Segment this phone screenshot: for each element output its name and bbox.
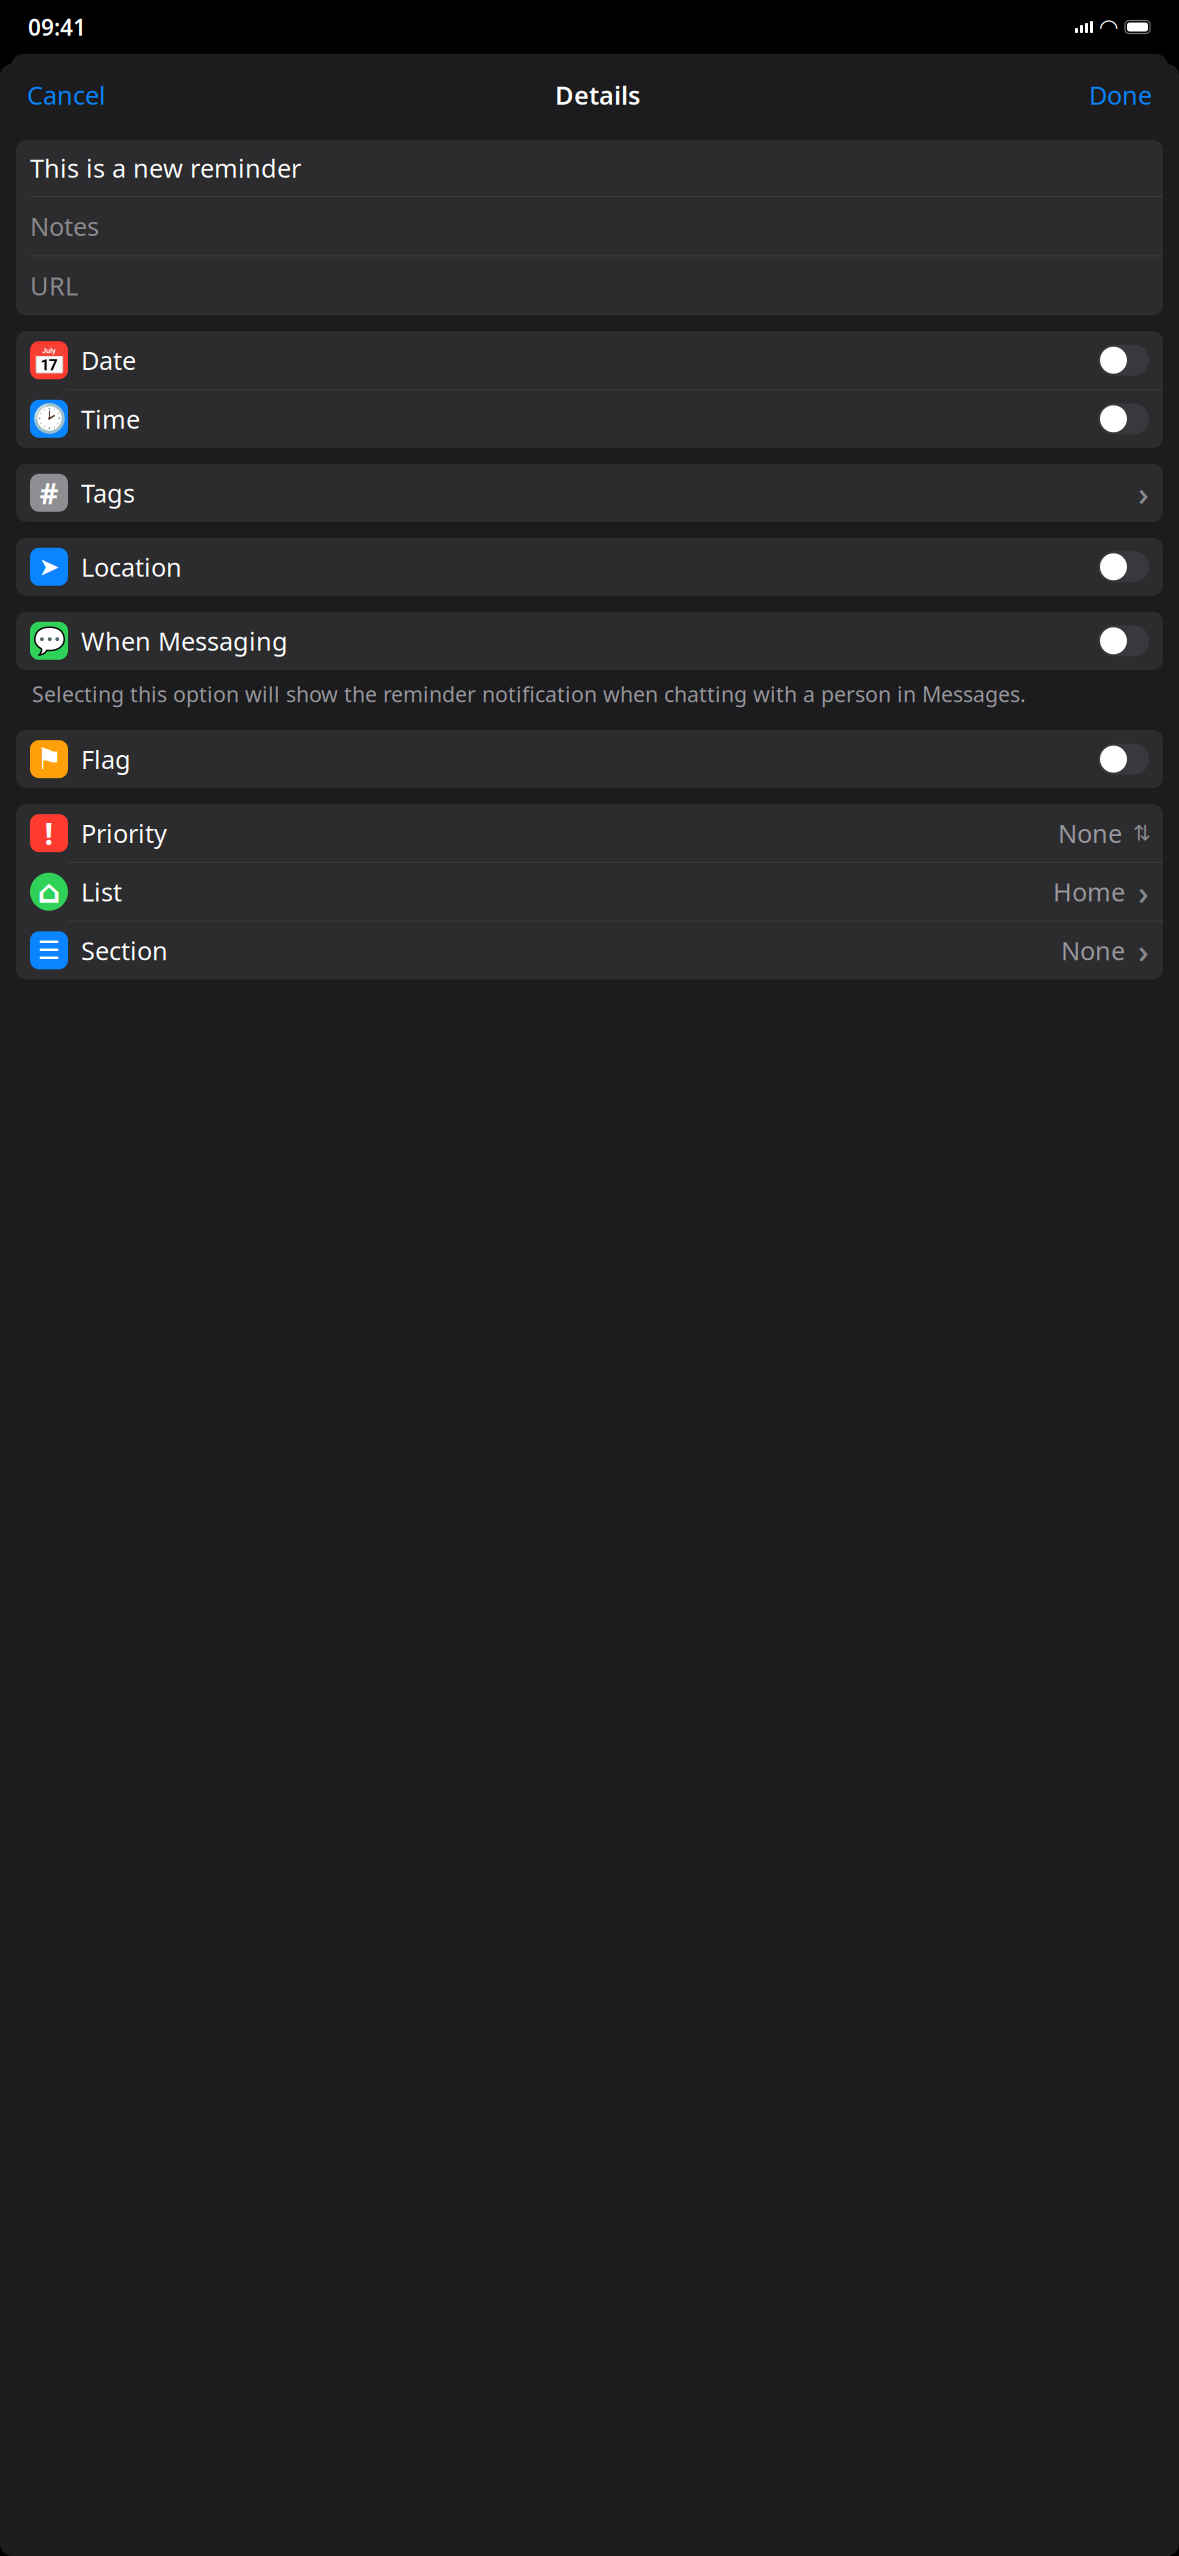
staticText: Notes	[30, 209, 99, 243]
staticText: Date	[81, 343, 136, 377]
button[interactable]: Done	[1085, 73, 1156, 117]
staticText: Cancel	[27, 78, 106, 112]
staticText: None	[1061, 933, 1125, 967]
staticText: #	[39, 473, 58, 512]
staticText: ☰	[37, 936, 60, 965]
button[interactable]: This is a new reminder	[16, 140, 1163, 196]
button[interactable]: #	[16, 464, 1163, 522]
staticText: ◠	[1100, 14, 1117, 40]
staticText: Details	[555, 78, 640, 112]
staticText: Done	[1089, 78, 1152, 112]
staticText: 09:41	[28, 12, 86, 42]
staticText: List	[81, 875, 122, 908]
button[interactable]: ⌂	[16, 863, 1163, 921]
staticText: Section	[81, 933, 168, 967]
staticText: 💬	[32, 626, 65, 656]
staticText: !	[44, 813, 53, 853]
staticText: Flag	[81, 742, 131, 776]
button[interactable]: ⚑	[16, 730, 1163, 788]
staticText: ➤	[38, 552, 59, 581]
staticText: ⌂	[37, 874, 60, 910]
button[interactable]: Notes	[16, 197, 1163, 256]
staticText: When Messaging	[81, 624, 288, 658]
button[interactable]: 📅	[16, 331, 1163, 389]
staticText: 📅	[31, 344, 66, 376]
staticText: Priority	[81, 816, 167, 850]
staticText: Home	[1053, 875, 1125, 908]
button[interactable]: Cancel	[23, 73, 110, 117]
staticText: Time	[81, 402, 140, 436]
staticText: URL	[30, 269, 78, 302]
staticText: ›	[1138, 471, 1149, 515]
staticText: ›	[1138, 928, 1149, 972]
button[interactable]: URL	[16, 256, 1163, 315]
staticText: ›	[1138, 870, 1149, 914]
staticText: ⚑	[36, 742, 62, 776]
staticText: ⇅	[1133, 821, 1151, 845]
staticText: Selecting this option will show the remi…	[32, 680, 1026, 708]
button[interactable]: !	[16, 804, 1163, 862]
staticText: None	[1058, 816, 1122, 850]
staticText: Tags	[81, 476, 135, 510]
button[interactable]: ➤	[16, 538, 1163, 596]
staticText: 🕑	[31, 403, 66, 435]
button[interactable]: 🕑	[16, 390, 1163, 448]
staticText: Location	[81, 550, 182, 584]
staticText: This is a new reminder	[30, 151, 301, 185]
button[interactable]: 💬	[16, 612, 1163, 670]
button[interactable]: ☰	[16, 921, 1163, 979]
